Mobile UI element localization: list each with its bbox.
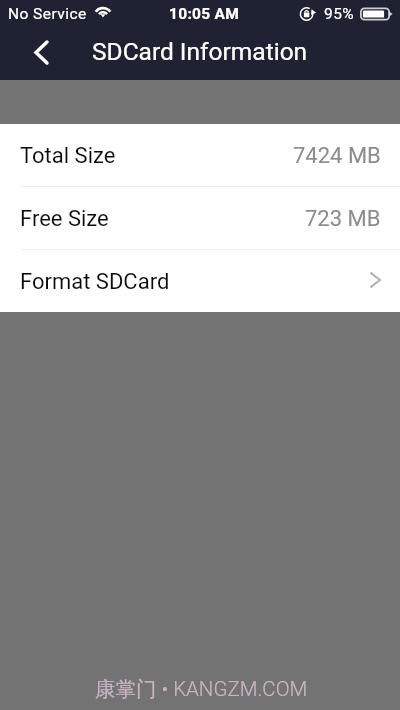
button[interactable]: Back (34, 32, 74, 76)
staticText: Free Size (20, 206, 109, 232)
staticText: 10:05 AM (169, 5, 240, 23)
button[interactable]: Free Size (0, 187, 400, 250)
staticText: Total Size (20, 143, 116, 169)
staticText: SDCard Information (92, 37, 308, 66)
staticText: 康掌门 • KANGZM.COM (95, 676, 308, 702)
button[interactable]: Total Size (0, 124, 400, 187)
staticText: 95% (324, 5, 355, 23)
staticText: Format SDCard (20, 269, 170, 295)
button[interactable]: Format SDCard (0, 250, 400, 312)
staticText: No Service (8, 5, 87, 23)
staticText: 723 MB (305, 206, 381, 232)
staticText: 7424 MB (293, 143, 381, 169)
